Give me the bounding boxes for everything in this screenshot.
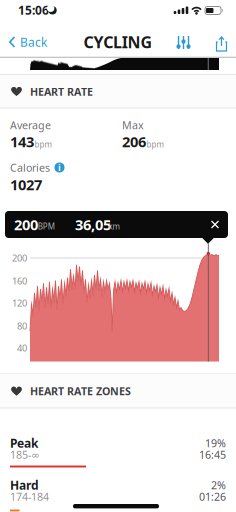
- staticText: HEART RATE ZONES: [30, 384, 131, 398]
- staticText: 01:26: [199, 489, 226, 504]
- staticText: bpm: [146, 139, 163, 150]
- button[interactable]: [172, 29, 194, 55]
- staticText: HEART RATE: [30, 84, 93, 99]
- staticText: 80: [17, 320, 27, 332]
- staticText: Back: [20, 34, 47, 50]
- staticText: Average: [10, 118, 51, 132]
- staticText: Hard: [10, 477, 39, 493]
- staticText: 15:06: [18, 2, 49, 18]
- staticText: 206: [122, 132, 146, 151]
- staticText: Calories: [10, 160, 50, 175]
- staticText: 120: [12, 297, 27, 309]
- staticText: 185-∞: [10, 447, 40, 462]
- staticText: 40: [17, 342, 27, 354]
- button[interactable]: Back: [6, 29, 50, 55]
- staticText: 2%: [211, 478, 226, 492]
- staticText: 16:45: [199, 447, 226, 462]
- staticText: 36,05: [75, 215, 111, 234]
- staticText: i: [58, 161, 61, 174]
- staticText: 200: [14, 215, 38, 234]
- button[interactable]: [206, 215, 224, 233]
- staticText: 1027: [10, 175, 42, 194]
- staticText: 200: [12, 252, 27, 264]
- staticText: Peak: [10, 435, 38, 451]
- button[interactable]: [211, 32, 231, 56]
- staticText: 19%: [205, 436, 226, 450]
- staticText: km: [108, 221, 119, 232]
- staticText: 143: [10, 132, 34, 151]
- button[interactable]: i: [53, 161, 65, 173]
- staticText: BPM: [38, 221, 55, 232]
- staticText: 174-184: [10, 489, 49, 504]
- staticText: CYCLING: [84, 31, 152, 53]
- staticText: Max: [122, 118, 144, 132]
- staticText: 160: [12, 275, 27, 287]
- staticText: bpm: [34, 139, 51, 150]
